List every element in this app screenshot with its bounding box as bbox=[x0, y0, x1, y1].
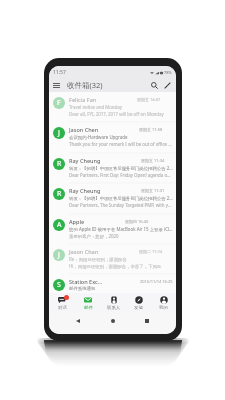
staticText: R bbox=[57, 159, 62, 169]
button[interactable]: S bbox=[49, 274, 176, 293]
staticText: 11:57 bbox=[53, 69, 66, 76]
staticText: Dear Partners, First Day: Friday Open! a… bbox=[69, 172, 173, 178]
staticText: 对话 bbox=[58, 305, 67, 311]
staticText: 会议预约-Hardware Upgrade bbox=[69, 134, 128, 140]
staticText: Dear Partners, The Sunday Targeted PMP, … bbox=[69, 202, 173, 208]
staticText: S bbox=[57, 280, 61, 290]
button[interactable]: F bbox=[49, 92, 176, 122]
staticText: 星期五 14:47 bbox=[137, 97, 161, 102]
staticText: Re：周报已经收到，谢谢配合 bbox=[69, 256, 127, 262]
button[interactable]: 邮件 bbox=[75, 293, 101, 312]
button[interactable]: Back bbox=[73, 316, 83, 326]
staticText: 星期五 11:34 bbox=[141, 158, 165, 163]
staticText: 联系人 bbox=[107, 305, 121, 311]
button[interactable]: A bbox=[49, 214, 176, 244]
button[interactable]: Recents bbox=[142, 316, 152, 326]
staticText: J bbox=[58, 128, 60, 138]
button[interactable]: Compose bbox=[161, 79, 174, 92]
staticText: F bbox=[57, 98, 61, 108]
staticText: 您的 Apple ID 被用于在 MacBook Air 15 上登录 iClo… bbox=[69, 226, 173, 232]
button[interactable]: 我的 bbox=[151, 293, 176, 312]
staticText: 转发：【招聘】中国区售后服务部门岗位招聘公告 2.0 Campaign bbox=[69, 195, 173, 201]
staticText: Ray Cheung bbox=[69, 187, 101, 194]
staticText: 2016/11/14 16:25 bbox=[140, 279, 173, 284]
button[interactable]: 对话 bbox=[49, 293, 75, 312]
staticText: Apple bbox=[69, 218, 85, 225]
staticText: 亲爱的客户：您好，2020 bbox=[69, 233, 119, 239]
button[interactable]: Search bbox=[148, 79, 161, 92]
staticText: Hi，周报已经收到，谢谢配合，辛苦了，下周见 bbox=[69, 263, 162, 269]
staticText: A bbox=[57, 220, 62, 230]
button[interactable]: 发现 bbox=[126, 293, 151, 312]
button[interactable]: J bbox=[49, 244, 176, 274]
button[interactable]: R bbox=[49, 183, 176, 213]
staticText: Travel notice and Monday bbox=[69, 104, 122, 110]
staticText: Felicia Fan bbox=[69, 96, 97, 103]
staticText: 78% bbox=[164, 70, 172, 75]
staticText: Dear all, FYI, 2017, 2017 will be off on… bbox=[69, 111, 164, 117]
staticText: J bbox=[58, 250, 60, 260]
staticText: R bbox=[57, 189, 62, 199]
staticText: 发现 bbox=[134, 305, 143, 311]
staticText: Jason Chen bbox=[69, 126, 99, 133]
staticText: 转发：【招聘】中国区售后服务部门岗位招聘公告 2.0 Campaign bbox=[69, 165, 173, 171]
staticText: 星期五 11:31 bbox=[141, 188, 165, 193]
staticText: 星期二 11:14 bbox=[139, 249, 163, 254]
staticText: 星期五 11:58 bbox=[139, 127, 163, 132]
staticText: 星期四 16:40 bbox=[125, 219, 149, 224]
staticText: Station Exchange bbox=[69, 278, 104, 285]
staticText: 邮件 bbox=[84, 305, 93, 311]
staticText: Thank you for your remark I will be out … bbox=[69, 141, 173, 147]
button[interactable]: J bbox=[49, 122, 176, 152]
button[interactable]: 联系人 bbox=[101, 293, 126, 312]
staticText: Ray Cheung bbox=[69, 157, 101, 164]
staticText: Jason Chan bbox=[69, 248, 99, 255]
button[interactable]: Home bbox=[108, 316, 118, 326]
staticText: 我的 bbox=[159, 305, 168, 311]
button[interactable]: Menu bbox=[50, 79, 62, 91]
staticText: 邮件系统通知 bbox=[69, 286, 96, 292]
button[interactable]: R bbox=[49, 153, 176, 183]
staticText: 收件箱(32) bbox=[67, 80, 103, 90]
